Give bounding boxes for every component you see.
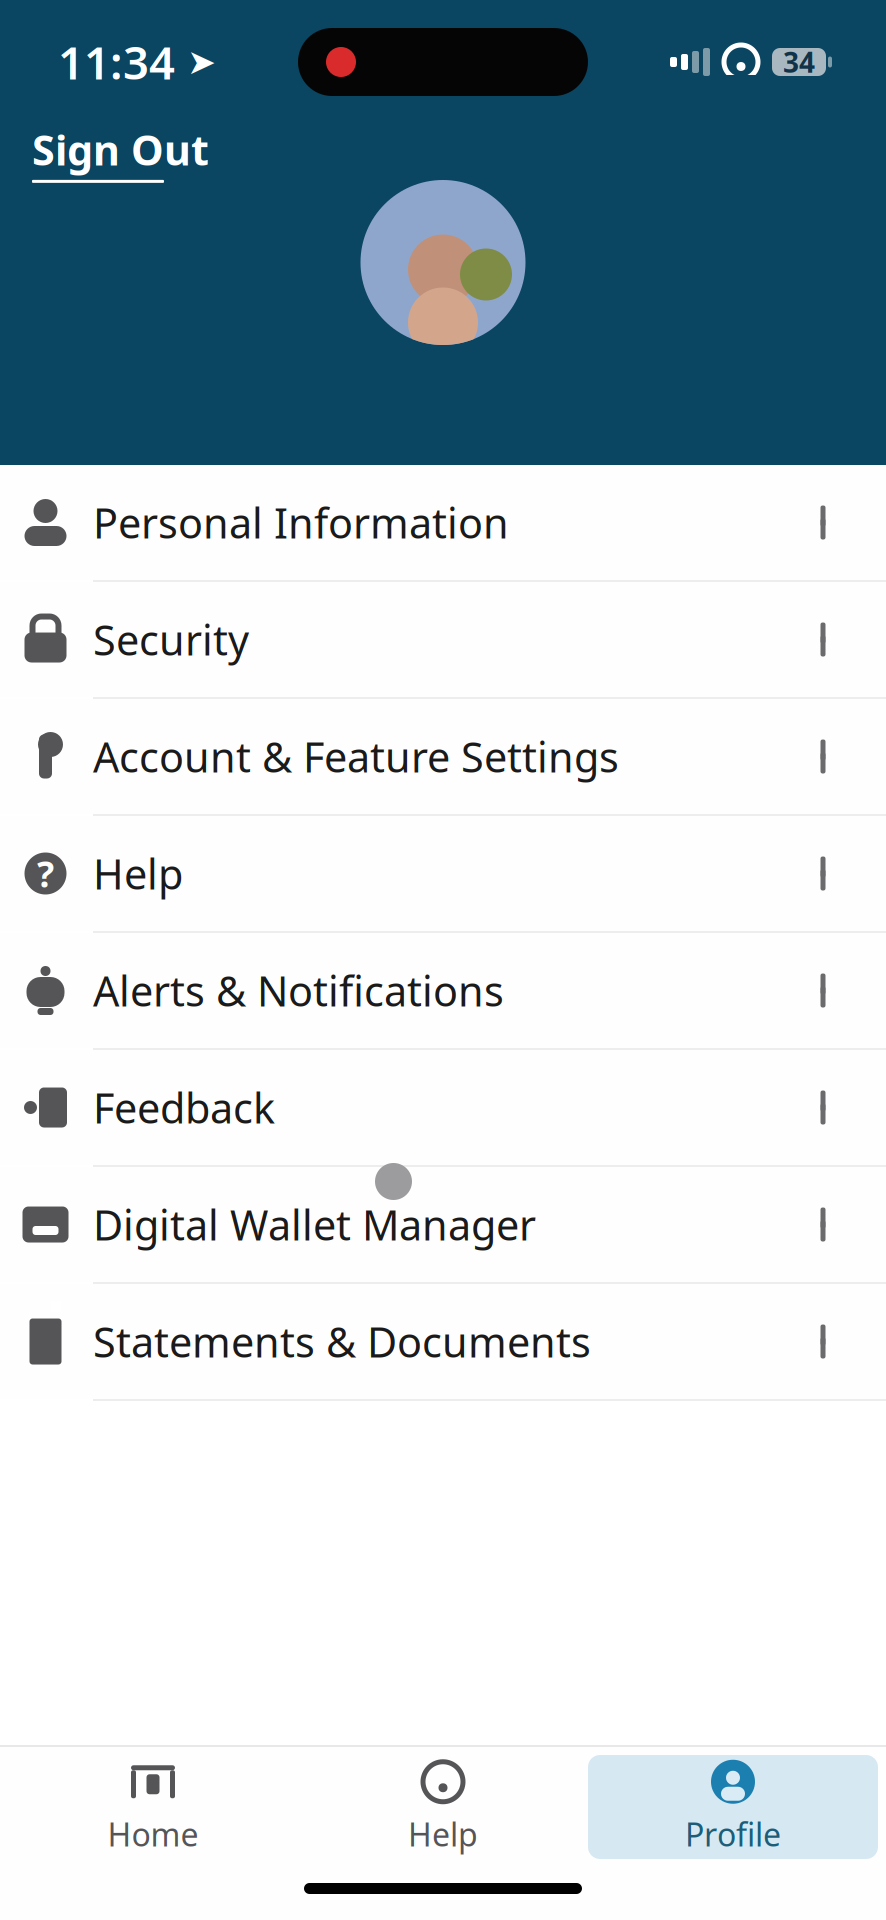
staticText: Personal Information — [93, 495, 509, 550]
button[interactable]: ? — [0, 816, 886, 933]
staticText: Profile — [685, 1813, 781, 1855]
button[interactable]: Alerts & Notifications — [0, 933, 886, 1050]
staticText: Home — [107, 1813, 198, 1855]
staticText: Feedback — [93, 1080, 275, 1135]
staticText: ➤ — [175, 42, 216, 82]
button[interactable]: Sign Out — [0, 114, 229, 191]
button[interactable]: Feedback — [0, 1050, 886, 1167]
staticText: Security — [93, 612, 249, 667]
staticText: 11:34 — [58, 32, 175, 92]
staticText: Digital Wallet Manager — [93, 1197, 536, 1252]
button[interactable]: Profile — [588, 1755, 878, 1859]
staticText: 34 — [783, 43, 815, 81]
button[interactable]: Digital Wallet Manager — [0, 1167, 886, 1284]
button[interactable]: Security — [0, 582, 886, 699]
button[interactable]: Help — [298, 1755, 588, 1859]
staticText: Help — [93, 846, 183, 901]
staticText: Help — [408, 1813, 478, 1855]
staticText: ? — [37, 850, 54, 897]
staticText: Account & Feature Settings — [93, 729, 619, 784]
button[interactable]: Home — [8, 1755, 298, 1859]
button[interactable]: Statements & Documents — [0, 1284, 886, 1401]
button[interactable]: Account & Feature Settings — [0, 699, 886, 816]
staticText: Sign Out — [32, 122, 209, 177]
button[interactable]: Personal Information — [0, 465, 886, 582]
staticText: Statements & Documents — [93, 1314, 591, 1369]
staticText: Alerts & Notifications — [93, 963, 504, 1018]
